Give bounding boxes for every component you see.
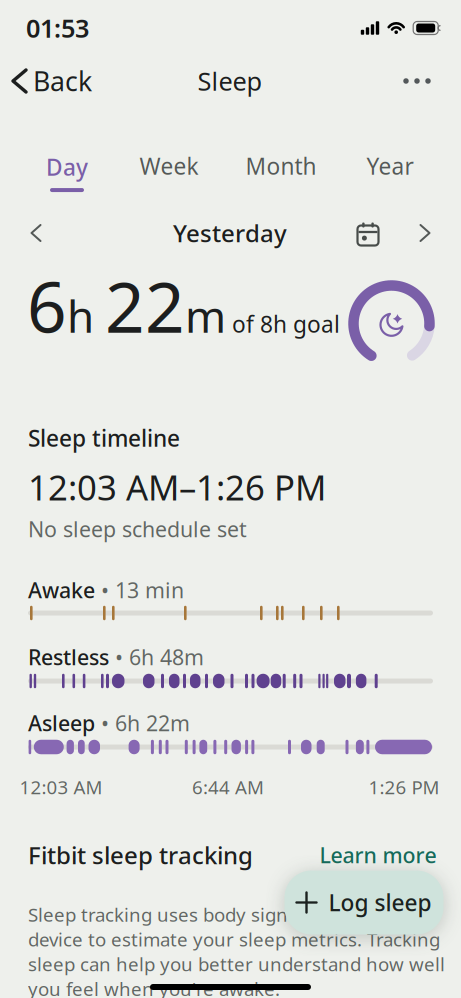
staticText: Sleep xyxy=(197,64,262,98)
button[interactable]: Month xyxy=(245,151,316,181)
staticText: Fitbit sleep tracking xyxy=(28,839,253,871)
button[interactable] xyxy=(410,218,440,248)
staticText: • xyxy=(101,709,109,737)
button[interactable]: Day xyxy=(46,152,88,192)
staticText: Back xyxy=(33,63,92,99)
button[interactable]: Back xyxy=(13,63,92,99)
button[interactable]: Year xyxy=(366,151,413,181)
staticText: 12:03 AM xyxy=(19,775,102,799)
staticText: Month xyxy=(245,151,316,181)
staticText: 6 xyxy=(27,260,67,352)
button[interactable]: Log sleep xyxy=(284,870,443,934)
staticText: Sleep tracking uses body signals from yo… xyxy=(28,902,445,998)
staticText: 22 xyxy=(105,260,185,352)
staticText: 6h 48m xyxy=(129,643,204,671)
staticText: Yesterday xyxy=(173,217,287,249)
staticText: Day xyxy=(46,152,88,182)
staticText: Log sleep xyxy=(328,887,431,917)
button[interactable]: Learn more xyxy=(319,841,436,869)
staticText: Restless xyxy=(28,643,109,671)
staticText: Awake xyxy=(28,576,95,604)
button[interactable]: Week xyxy=(139,151,198,181)
staticText: No sleep schedule set xyxy=(28,515,247,543)
staticText: 1:26 PM xyxy=(368,775,439,799)
staticText: Learn more xyxy=(319,841,436,869)
staticText: Week xyxy=(139,151,198,181)
staticText: m xyxy=(185,287,226,345)
staticText: 6h 22m xyxy=(115,709,190,737)
staticText: Year xyxy=(366,151,413,181)
staticText: 13 min xyxy=(115,576,184,604)
staticText: Sleep timeline xyxy=(28,423,180,453)
staticText: • xyxy=(115,643,123,671)
button[interactable] xyxy=(21,218,51,248)
button[interactable] xyxy=(351,217,385,251)
staticText: 6:44 AM xyxy=(192,775,264,799)
staticText: 01:53 xyxy=(26,11,89,45)
staticText: of 8h goal xyxy=(226,309,340,339)
button[interactable] xyxy=(397,66,437,96)
staticText: Asleep xyxy=(28,709,95,737)
staticText: 12:03 AM–1:26 PM xyxy=(28,464,326,510)
staticText: h xyxy=(67,287,105,345)
staticText: • xyxy=(101,576,109,604)
